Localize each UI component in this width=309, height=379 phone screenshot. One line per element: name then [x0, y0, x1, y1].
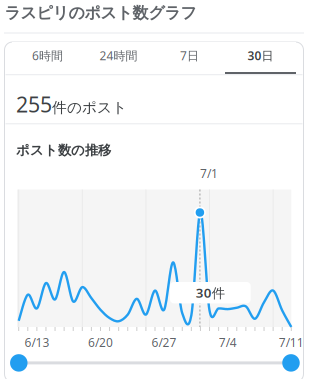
- button[interactable]: 7日: [154, 42, 225, 74]
- staticText: 7/1: [200, 165, 218, 181]
- staticText: ラスピリのポスト数グラフ: [4, 3, 196, 23]
- staticText: 7/4: [219, 334, 237, 350]
- staticText: 7/11: [279, 334, 304, 350]
- button[interactable]: 24時間: [83, 42, 154, 74]
- button[interactable]: Range start: [10, 354, 28, 372]
- staticText: 30件: [196, 284, 225, 301]
- staticText: 30日: [247, 48, 273, 63]
- staticText: 7日: [180, 48, 199, 63]
- staticText: ポスト数の推移: [16, 142, 111, 158]
- staticText: 6時間: [32, 48, 63, 63]
- button[interactable]: 6時間: [12, 42, 83, 74]
- staticText: 6/13: [24, 334, 49, 350]
- staticText: 24時間: [99, 48, 137, 63]
- staticText: 255: [16, 90, 52, 118]
- staticText: 6/20: [88, 334, 113, 350]
- staticText: 6/27: [152, 334, 177, 350]
- button[interactable]: 30日: [225, 42, 296, 74]
- button[interactable]: Range end: [282, 354, 300, 372]
- staticText: 件のポスト: [52, 98, 127, 116]
